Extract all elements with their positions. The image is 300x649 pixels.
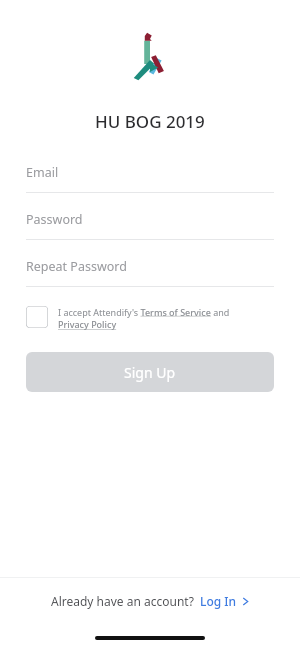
button[interactable]: Sign Up xyxy=(26,352,274,392)
staticText: Repeat Password xyxy=(26,258,127,275)
other: Accept terms checkbox xyxy=(26,306,48,328)
button[interactable]: Password xyxy=(26,211,274,240)
button[interactable]: Repeat Password xyxy=(26,258,274,287)
staticText: Password xyxy=(26,211,83,228)
button[interactable]: Already have an account? xyxy=(51,593,249,609)
staticText: Already have an account? xyxy=(51,593,194,609)
staticText: Email xyxy=(26,164,59,181)
staticText: I accept Attendify's Terms of Service an… xyxy=(58,306,230,331)
staticText: Sign Up xyxy=(124,363,176,382)
staticText: HU BOG 2019 xyxy=(95,110,205,133)
button[interactable]: Accept terms checkbox xyxy=(26,306,274,331)
button[interactable]: Email xyxy=(26,164,274,193)
staticText: Log In xyxy=(200,593,237,609)
